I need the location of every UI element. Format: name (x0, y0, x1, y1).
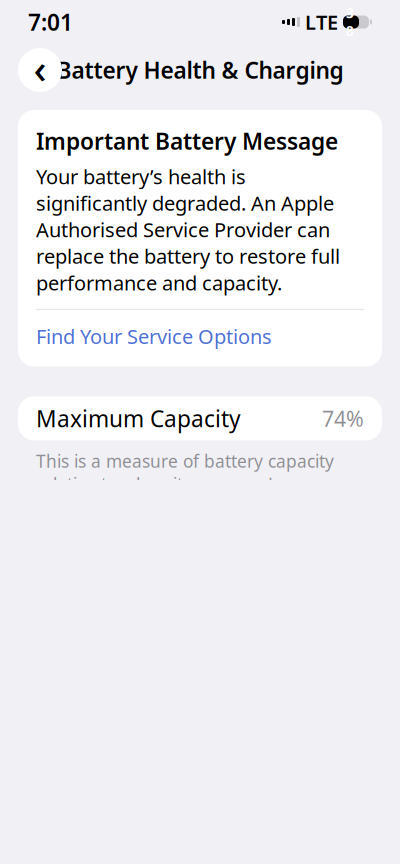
staticText: Find Your Service Options (36, 323, 272, 349)
staticText: 38 (346, 4, 354, 40)
staticText: ‹ (33, 41, 46, 94)
staticText: Maximum Capacity (36, 403, 241, 433)
staticText: 7:01 (28, 7, 73, 37)
staticText: Battery Health & Charging (56, 55, 343, 85)
button[interactable]: Back (18, 48, 62, 92)
button[interactable]: Find Your Service Options (36, 310, 364, 362)
staticText: 74% (322, 404, 364, 433)
staticText: This is a measure of battery capacity re… (36, 449, 337, 542)
staticText: Your battery’s health is significantly d… (36, 163, 340, 296)
staticText: LTE (305, 9, 338, 35)
staticText: Important Battery Message (36, 126, 338, 156)
